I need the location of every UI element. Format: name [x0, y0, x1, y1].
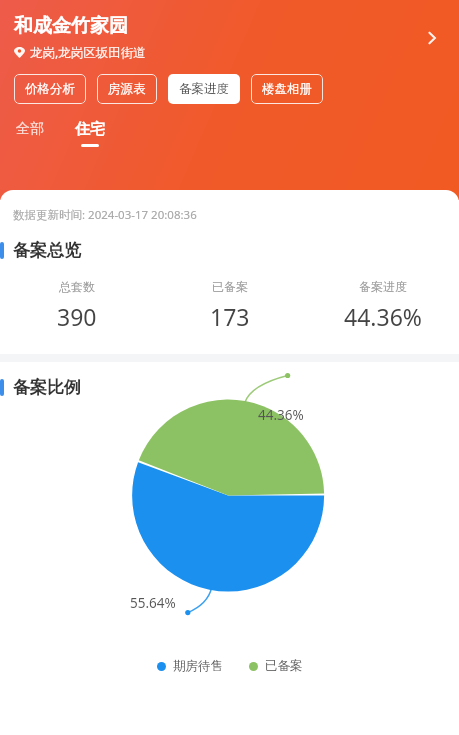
staticText: 173 — [210, 301, 250, 332]
button[interactable]: 备案进度 — [168, 74, 240, 104]
button[interactable]: 房源表 — [97, 74, 157, 104]
staticText: 备案总览 — [13, 240, 81, 261]
staticText: 44.36% — [258, 406, 304, 424]
button[interactable]: 全部 — [14, 120, 46, 146]
staticText: 龙岗,龙岗区坂田街道 — [30, 44, 146, 61]
button[interactable]: 价格分析 — [14, 74, 86, 104]
button[interactable]: More details — [417, 23, 447, 53]
staticText: 已备案 — [265, 658, 303, 674]
button[interactable]: 住宅 — [73, 120, 107, 147]
button[interactable]: 楼盘相册 — [251, 74, 323, 104]
staticText: 44.36% — [344, 301, 422, 332]
staticText: 房源表 — [108, 81, 146, 97]
staticText: 全部 — [16, 120, 44, 138]
staticText: 和成金竹家园 — [14, 14, 128, 38]
staticText: 55.64% — [130, 594, 176, 612]
staticText: 已备案 — [212, 279, 248, 294]
staticText: 住宅 — [75, 120, 105, 139]
staticText: 楼盘相册 — [262, 81, 312, 97]
staticText: 390 — [57, 301, 97, 332]
staticText: 备案比例 — [13, 377, 81, 398]
staticText: 备案进度 — [179, 81, 229, 97]
staticText: 价格分析 — [25, 81, 75, 97]
staticText: 总套数 — [59, 279, 95, 294]
staticText: 备案进度 — [359, 279, 407, 294]
staticText: 数据更新时间: 2024-03-17 20:08:36 — [13, 207, 197, 223]
staticText: 期房待售 — [173, 658, 223, 674]
